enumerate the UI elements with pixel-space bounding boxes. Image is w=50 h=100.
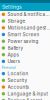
button[interactable]: Backup & reset (0, 97, 50, 100)
button[interactable]: Location (0, 70, 50, 77)
staticText: Storage (7, 18, 25, 24)
button[interactable]: Accounts (0, 84, 50, 90)
button[interactable]: Smart Screen (0, 31, 50, 38)
staticText: Users (7, 59, 19, 64)
staticText: Settings (2, 4, 22, 10)
staticText: Apps (7, 52, 18, 57)
staticText: Security (7, 77, 27, 83)
staticText: Personal (2, 66, 16, 69)
staticText: Sound & notification (7, 11, 50, 17)
button[interactable]: Security (0, 77, 50, 84)
button[interactable]: Power saving (0, 38, 50, 45)
button[interactable]: Battery (0, 45, 50, 51)
button[interactable]: Motions and gestures (0, 24, 50, 31)
staticText: Backup & reset (7, 98, 42, 100)
staticText: Smart Screen (7, 32, 39, 37)
staticText: Motions and gestures (7, 25, 50, 31)
button[interactable]: Sound & notification (0, 11, 50, 18)
staticText: Battery (7, 45, 23, 51)
staticText: Location (7, 71, 28, 76)
button[interactable]: Storage (0, 18, 50, 24)
button[interactable]: Language & input (0, 90, 50, 97)
button[interactable]: Apps (0, 51, 50, 58)
staticText: Language & input (7, 91, 48, 97)
staticText: Power saving (7, 38, 38, 44)
button[interactable]: Users (0, 58, 50, 65)
staticText: Accounts (7, 84, 28, 90)
